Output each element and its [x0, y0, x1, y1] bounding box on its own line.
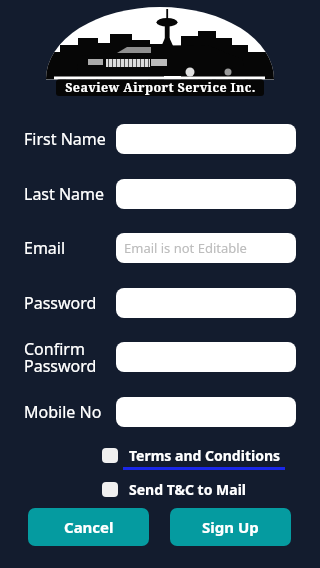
staticText: Email is not Editable [124, 239, 247, 257]
staticText: Seaview Airport Service Inc. [65, 79, 256, 96]
staticText: Password [24, 292, 97, 314]
staticText: Last Name [24, 183, 105, 205]
staticText: Mobile No [24, 401, 102, 423]
staticText: First Name [24, 128, 106, 150]
staticText: Email [24, 237, 66, 259]
staticText: Cancel [64, 517, 114, 537]
staticText: Sign Up [202, 517, 259, 537]
staticText: Confirm Password [24, 338, 97, 377]
staticText: Send T&C to Mail [129, 480, 246, 499]
staticText: Terms and Conditions [129, 446, 281, 465]
